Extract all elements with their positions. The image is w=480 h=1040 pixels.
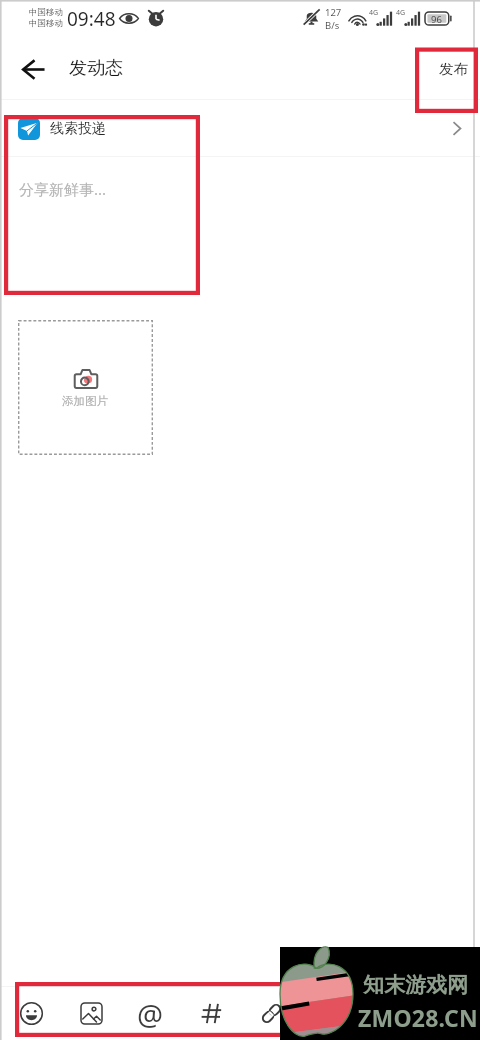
staticText: 分享新鲜事... [19,179,107,199]
staticText: ZMO28.CN [358,1002,478,1033]
staticText: 4G [369,8,379,18]
staticText: 127 [325,6,342,19]
button[interactable]: Topic [181,987,241,1040]
staticText: 发布 [439,60,468,78]
button[interactable]: Add image [18,320,153,455]
button[interactable]: 线索投递 [0,100,480,156]
staticText: 中国移动 [29,7,63,18]
button[interactable]: Emoji [1,987,61,1040]
staticText: 发动态 [69,57,123,80]
staticText: 添加图片 [62,394,108,408]
button[interactable]: 分享新鲜事... [0,157,480,312]
button[interactable]: Link [241,987,301,1040]
staticText: 中国移动 [29,18,63,29]
staticText: 知末游戏网 [363,972,468,998]
staticText: @ [137,995,164,1034]
staticText: B/s [325,19,340,32]
button[interactable]: Mention [121,987,181,1040]
staticText: 4G [396,8,406,18]
staticText: 96 [431,13,442,26]
button[interactable]: 发布 [420,40,478,99]
button[interactable]: Back [10,40,56,99]
staticText: 线索投递 [50,120,106,138]
staticText: 09:48 [67,6,116,32]
button[interactable]: Image [61,987,121,1040]
